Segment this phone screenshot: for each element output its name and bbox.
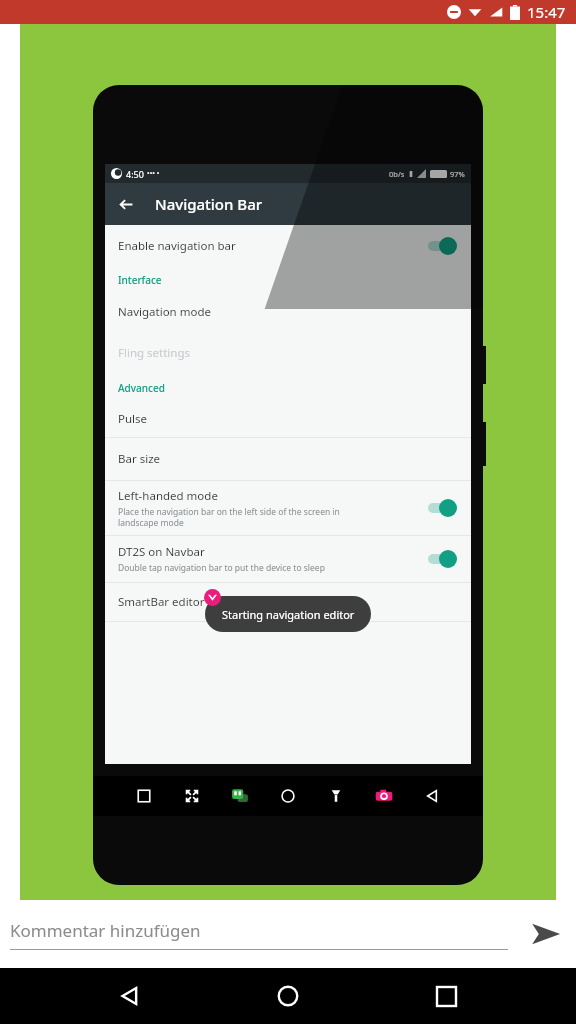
button[interactable]: Toggle Left-handed mode	[424, 498, 458, 518]
staticText: Place the navigation bar on the left sid…	[118, 506, 340, 528]
button[interactable]: Home	[260, 968, 316, 1024]
button[interactable]: Camera	[371, 783, 397, 809]
staticText: Kommentar hinzufügen	[10, 919, 201, 942]
button[interactable]: Back	[419, 783, 445, 809]
button[interactable]: Left-handed mode	[105, 481, 471, 535]
staticText: Advanced	[118, 381, 165, 395]
button[interactable]: Enable navigation bar	[105, 225, 471, 267]
staticText: Interface	[118, 273, 162, 287]
button[interactable]: DT2S on Navbar	[105, 536, 471, 582]
staticText: Starting navigation editor	[222, 607, 355, 622]
button[interactable]: SmartBar editor	[105, 583, 471, 621]
button[interactable]: Home	[275, 783, 301, 809]
button[interactable]: Kommentar hinzufügen	[10, 919, 508, 950]
button[interactable]: Toggle DT2S on Navbar	[424, 549, 458, 569]
button[interactable]: Pulse	[105, 401, 471, 437]
button[interactable]: Back	[105, 183, 147, 225]
button[interactable]: Flashlight	[323, 783, 349, 809]
button[interactable]: Recents	[418, 968, 474, 1024]
button[interactable]: Send	[522, 910, 570, 958]
staticText: Pulse	[118, 411, 148, 427]
staticText: DT2S on Navbar	[118, 544, 205, 560]
button[interactable]: Messages	[227, 783, 253, 809]
staticText: Fling settings	[118, 345, 191, 361]
button[interactable]: Recents	[131, 783, 157, 809]
button[interactable]: Back	[102, 968, 158, 1024]
button[interactable]: Fling settings	[105, 331, 471, 375]
button[interactable]: Bar size	[105, 438, 471, 480]
staticText: Left-handed mode	[118, 488, 218, 504]
staticText: Navigation mode	[118, 304, 211, 320]
staticText: 0b/s	[389, 169, 405, 179]
staticText: ••• •	[147, 169, 160, 179]
button[interactable]: Navigation mode	[105, 293, 471, 331]
staticText: 97%	[450, 169, 465, 179]
staticText: Navigation Bar	[155, 194, 263, 214]
staticText: Enable navigation bar	[118, 238, 424, 254]
button[interactable]: Expand	[179, 783, 205, 809]
staticText: Double tap navigation bar to put the dev…	[118, 562, 325, 574]
staticText: 15:47	[527, 2, 566, 22]
staticText: 4:50	[126, 168, 144, 180]
staticText: SmartBar editor	[118, 594, 205, 610]
button[interactable]: Toggle Enable navigation bar	[424, 236, 458, 256]
staticText: Bar size	[118, 451, 161, 467]
